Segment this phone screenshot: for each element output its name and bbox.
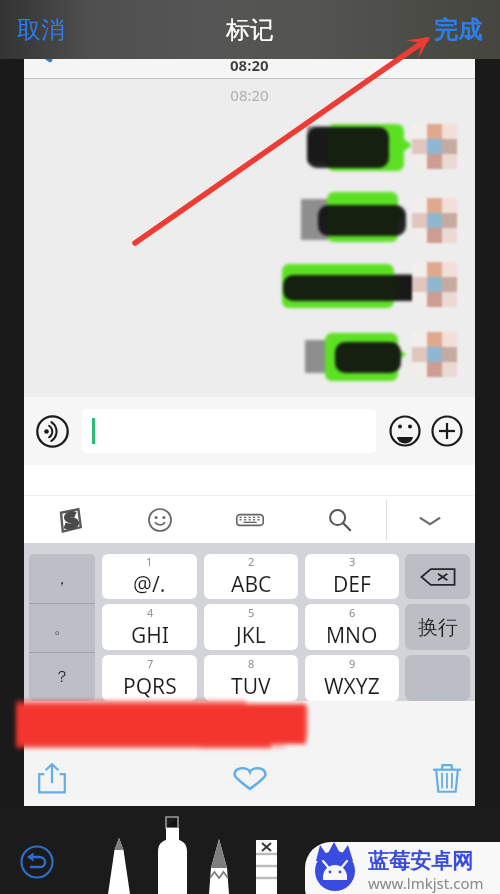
button[interactable]: Message bbox=[24, 329, 475, 381]
staticText: 蓝莓安卓网 bbox=[368, 848, 473, 874]
button[interactable]: Keyboard bbox=[205, 496, 295, 543]
staticText: 8 bbox=[248, 656, 255, 671]
button[interactable]: 2 bbox=[204, 554, 298, 599]
staticText: DEF bbox=[333, 570, 371, 599]
staticText: 1 bbox=[146, 554, 153, 569]
button[interactable]: 5 bbox=[204, 604, 298, 650]
button[interactable]: 换行 bbox=[405, 604, 470, 650]
button[interactable]: Message bbox=[24, 259, 475, 311]
staticText: TUV bbox=[231, 672, 271, 701]
button[interactable]: Search bbox=[295, 496, 385, 543]
button[interactable]: 1 bbox=[102, 554, 197, 599]
button[interactable]: Sogou input bbox=[24, 496, 115, 543]
staticText: 08:20 bbox=[230, 59, 269, 74]
staticText: 换行 bbox=[418, 615, 458, 640]
button[interactable] bbox=[405, 554, 470, 599]
button[interactable]: ， bbox=[29, 554, 95, 603]
button[interactable]: Undo bbox=[20, 845, 54, 879]
staticText: GHI bbox=[131, 621, 169, 650]
staticText: MNO bbox=[326, 621, 378, 650]
staticText: @/. bbox=[133, 570, 166, 599]
staticText: 完成 bbox=[434, 15, 482, 45]
button[interactable]: ？ bbox=[29, 653, 95, 701]
staticText: ？ bbox=[54, 667, 70, 687]
staticText: ABC bbox=[231, 570, 272, 599]
staticText: WXYZ bbox=[324, 672, 380, 701]
staticText: www.lmkjst.com bbox=[368, 873, 484, 893]
button[interactable]: Share bbox=[36, 701, 179, 806]
staticText: 标记 bbox=[226, 15, 274, 45]
button[interactable] bbox=[82, 409, 376, 453]
button[interactable]: Favorite bbox=[179, 701, 321, 806]
button[interactable]: 7 bbox=[102, 655, 197, 701]
staticText: 取消 bbox=[17, 15, 65, 45]
button[interactable]: Voice input bbox=[36, 415, 69, 448]
staticText: JKL bbox=[236, 621, 266, 650]
button[interactable]: Hide keyboard bbox=[385, 496, 475, 543]
button[interactable]: 8 bbox=[204, 655, 298, 701]
staticText: 7 bbox=[147, 656, 154, 671]
button[interactable]: Message bbox=[24, 119, 475, 171]
staticText: 3 bbox=[349, 554, 356, 569]
button[interactable]: Emoji bbox=[389, 415, 421, 447]
button[interactable]: 4 bbox=[102, 604, 197, 650]
button[interactable]: Delete bbox=[321, 701, 463, 806]
button[interactable]: More options bbox=[431, 415, 463, 447]
staticText: PQRS bbox=[123, 672, 177, 701]
staticText: 5 bbox=[248, 605, 255, 620]
staticText: 4 bbox=[147, 605, 154, 620]
button[interactable]: 完成 bbox=[416, 0, 500, 59]
button[interactable]: 。 bbox=[29, 604, 95, 652]
button[interactable]: Message bbox=[24, 189, 475, 241]
button[interactable]: 9 bbox=[305, 655, 399, 701]
staticText: 9 bbox=[349, 656, 356, 671]
button[interactable]: 6 bbox=[305, 604, 399, 650]
button[interactable]: Emoji bbox=[115, 496, 205, 543]
staticText: 08:20 bbox=[24, 85, 475, 105]
staticText: 6 bbox=[349, 605, 356, 620]
staticText: ， bbox=[54, 569, 70, 589]
button[interactable]: 取消 bbox=[0, 0, 82, 59]
staticText: 2 bbox=[248, 554, 255, 569]
staticText: 。 bbox=[54, 618, 70, 638]
button[interactable]: 3 bbox=[305, 554, 399, 599]
